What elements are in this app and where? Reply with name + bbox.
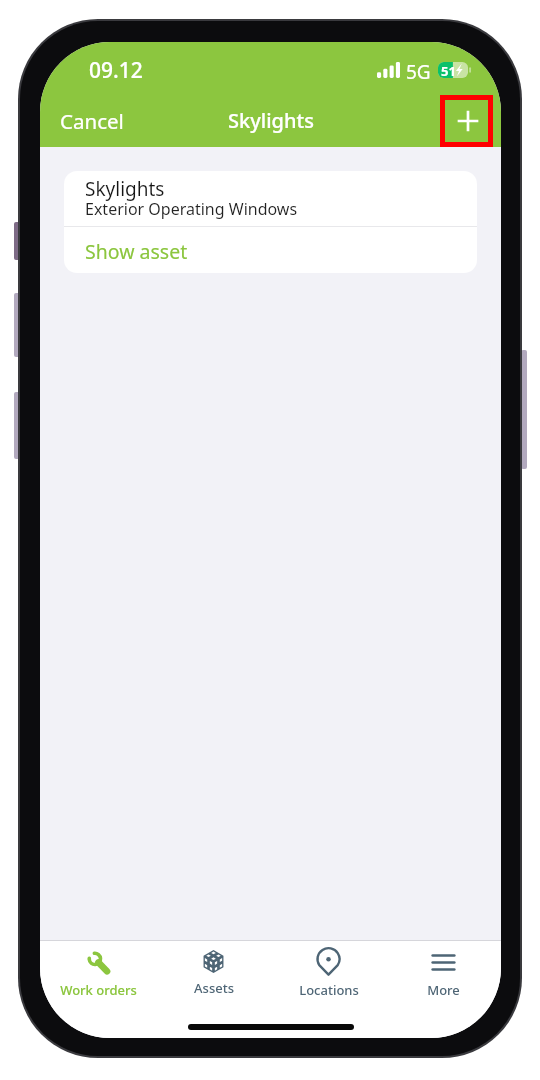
staticText: Skylights [85, 176, 165, 202]
staticText: Cancel [60, 107, 124, 135]
staticText: Show asset [85, 238, 188, 265]
button[interactable]: Work orders [40, 941, 156, 1007]
button[interactable]: Skylights [64, 171, 477, 226]
button[interactable]: Assets [156, 941, 271, 1007]
staticText: 5G [406, 59, 431, 85]
button[interactable]: Locations [271, 941, 386, 1007]
staticText: 09.12 [89, 56, 143, 85]
button[interactable]: Add [446, 99, 490, 143]
staticText: Assets [194, 979, 234, 997]
button[interactable]: Cancel [40, 90, 138, 147]
button[interactable]: Show asset [64, 227, 477, 273]
button[interactable]: More [386, 941, 501, 1007]
staticText: 51 [441, 62, 456, 78]
staticText: Work orders [60, 981, 137, 999]
staticText: Exterior Operating Windows [85, 198, 298, 220]
staticText: Locations [299, 981, 359, 999]
staticText: Skylights [228, 107, 314, 134]
staticText: More [427, 981, 460, 999]
